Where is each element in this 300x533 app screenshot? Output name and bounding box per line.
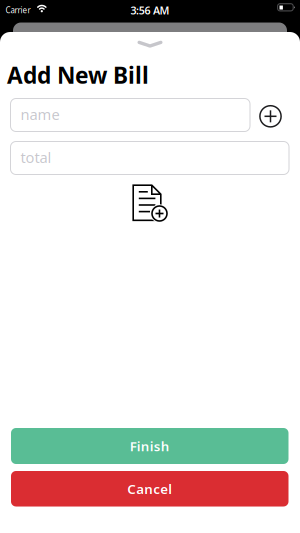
staticText: Add New Bill bbox=[7, 60, 149, 90]
button[interactable]: Dismiss bbox=[132, 36, 168, 52]
button[interactable]: Add name bbox=[259, 105, 282, 128]
staticText: total bbox=[20, 148, 51, 167]
button[interactable]: Finish bbox=[11, 428, 288, 464]
staticText: Cancel bbox=[127, 480, 172, 498]
staticText: Finish bbox=[130, 437, 170, 455]
staticText: name bbox=[20, 105, 59, 124]
staticText: Carrier bbox=[5, 5, 30, 15]
staticText: 3:56 AM bbox=[130, 3, 170, 17]
button[interactable]: Cancel bbox=[11, 471, 288, 506]
